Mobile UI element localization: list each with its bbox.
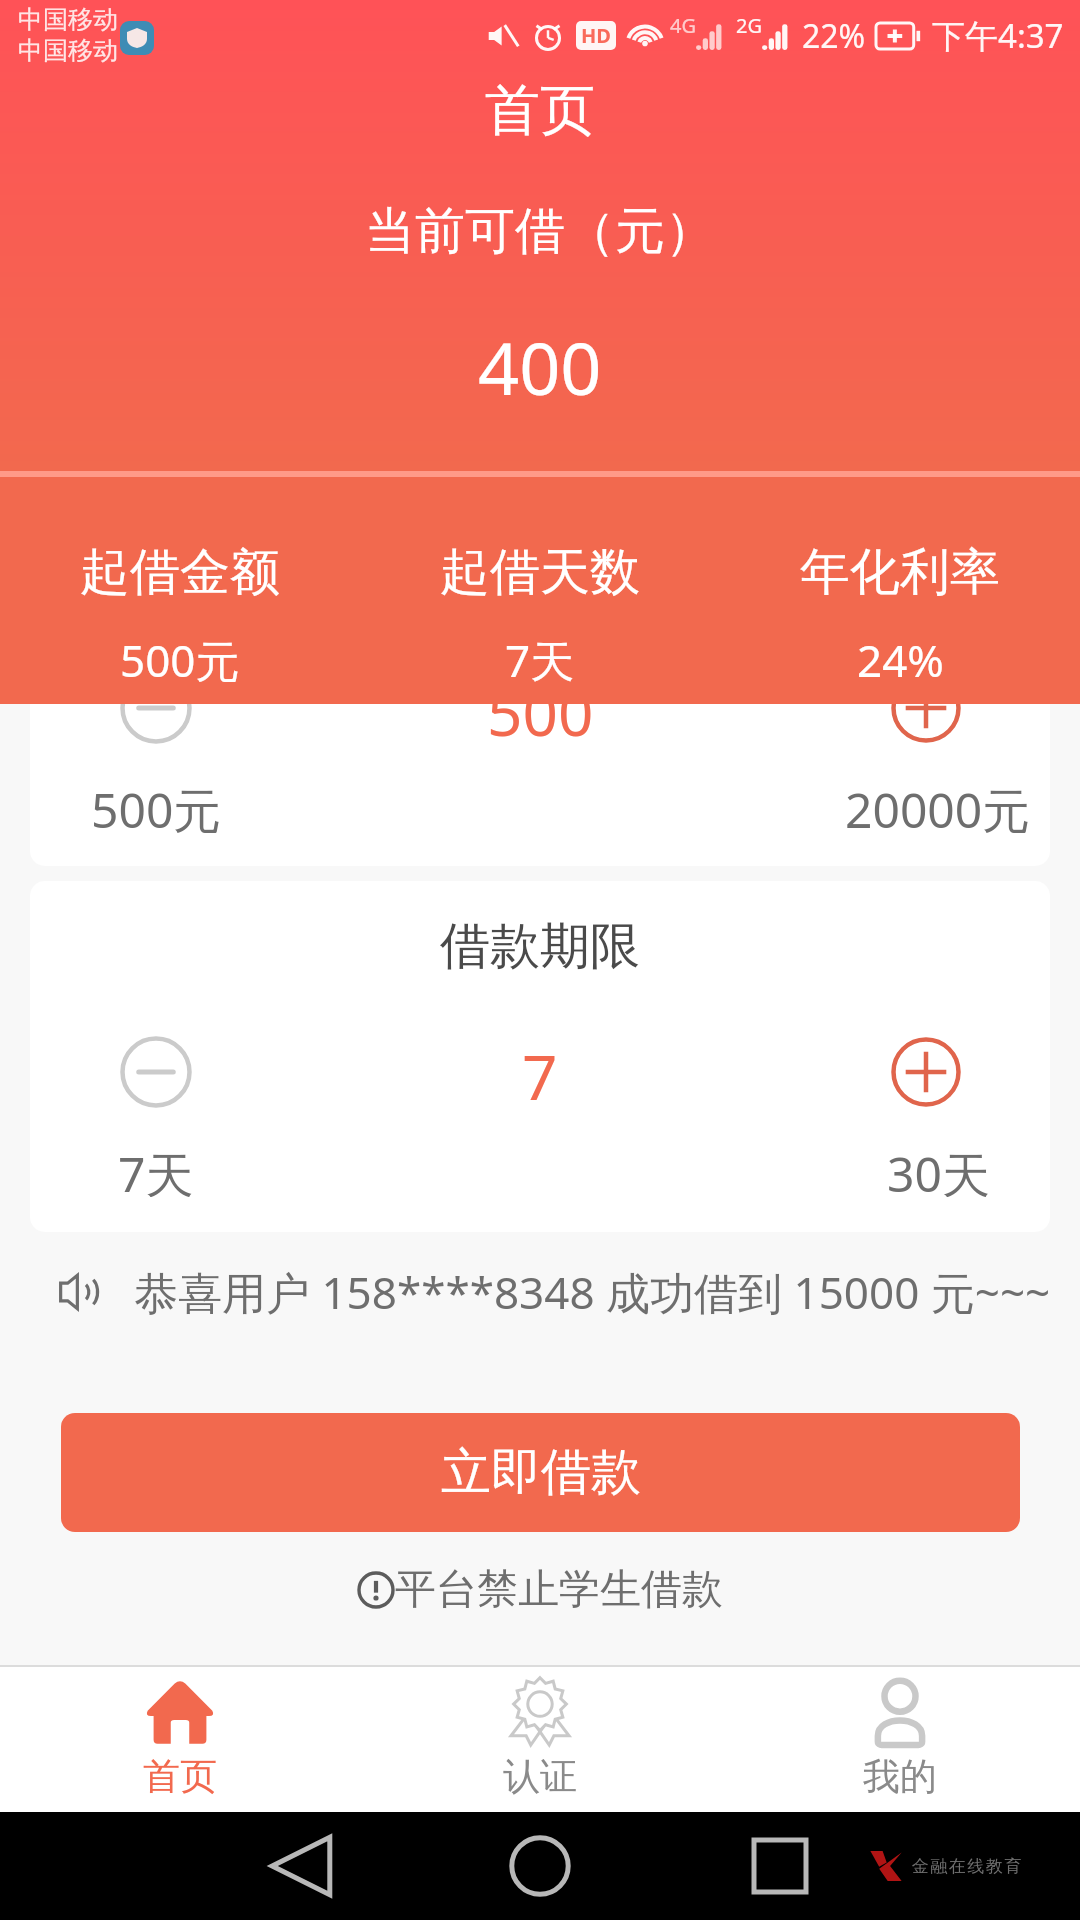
button[interactable]: 我的 (720, 1667, 1080, 1812)
button[interactable]: Decrease 借款期限 (118, 1034, 194, 1110)
button[interactable]: Recent apps (735, 1821, 825, 1911)
staticText: 首页 (143, 1753, 217, 1800)
button[interactable]: 认证 (360, 1667, 720, 1812)
staticText: 起借金额 (80, 541, 280, 604)
button[interactable]: 平台禁止学生借款 (357, 1564, 723, 1616)
staticText: 我的 (863, 1753, 937, 1800)
staticText: 500元 (120, 630, 240, 690)
staticText: 中国移动 (18, 4, 118, 35)
staticText: 起借天数 (440, 541, 640, 604)
staticText: 2G (736, 12, 762, 39)
staticText: HD (581, 22, 611, 49)
staticText: 金融在线教育 (911, 1856, 1022, 1877)
staticText: 恭喜用户 158****8348 成功借到 15000 元~~~ (134, 1262, 1051, 1322)
staticText: 400 (478, 318, 602, 416)
staticText: 7天 (118, 1141, 194, 1197)
button[interactable]: Increase 借款期限 (888, 1034, 964, 1110)
staticText: 20000元 (845, 777, 1031, 833)
button[interactable]: 恭喜用户 158****8348 成功借到 15000 元~~~ (58, 1262, 1080, 1322)
staticText: 22% (802, 14, 866, 58)
staticText: 首页 (485, 76, 595, 145)
staticText: 年化利率 (800, 541, 1000, 604)
staticText: 借款金额 (440, 551, 640, 614)
staticText: 认证 (503, 1753, 577, 1800)
staticText: 平台禁止学生借款 (395, 1564, 723, 1616)
staticText: 4G (670, 12, 696, 39)
staticText: 当前可借（元） (365, 200, 715, 263)
button[interactable]: Back (256, 1821, 346, 1911)
staticText: 下午4:37 (932, 13, 1064, 58)
staticText: 24% (857, 630, 944, 690)
button[interactable]: Home (495, 1821, 585, 1911)
button[interactable]: 首页 (0, 1667, 360, 1812)
staticText: 7天 (505, 630, 575, 690)
staticText: 立即借款 (441, 1441, 641, 1504)
button[interactable]: Increase 借款金额 (888, 670, 964, 746)
staticText: 500元 (91, 777, 222, 833)
button[interactable]: 立即借款 (61, 1413, 1020, 1532)
staticText: 30天 (887, 1141, 990, 1197)
button[interactable]: Decrease 借款金额 (118, 670, 194, 746)
staticText: 中国移动 (18, 35, 118, 66)
staticText: 500 (487, 670, 594, 746)
staticText: 借款期限 (440, 915, 640, 978)
staticText: 7 (522, 1034, 558, 1110)
